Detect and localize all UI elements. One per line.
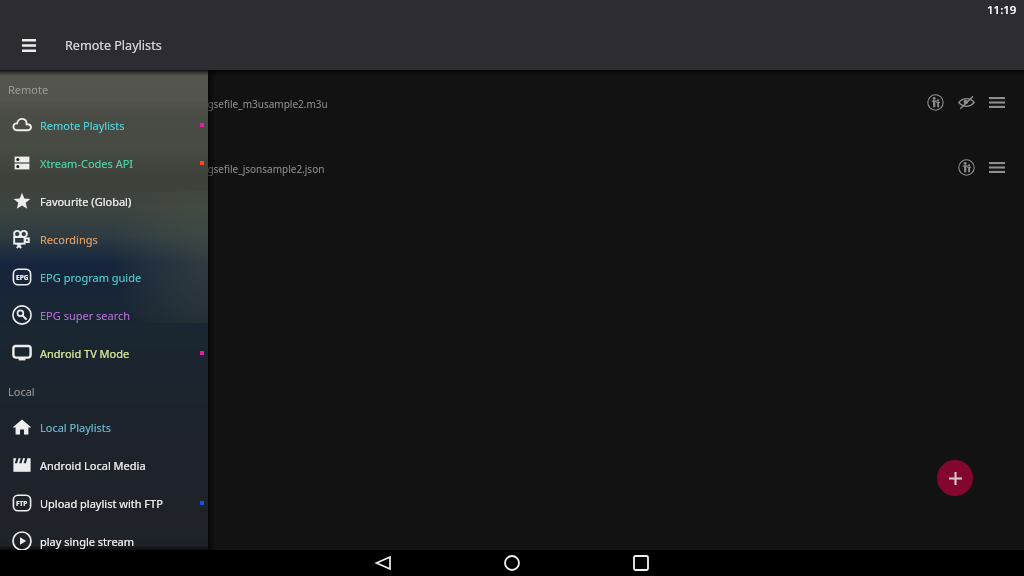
staticText: Local Playlists [40, 420, 112, 435]
staticText: EPG super search [40, 308, 131, 323]
button[interactable]: Remote Playlists [0, 106, 208, 144]
button[interactable]: Favourite (Global) [0, 182, 208, 220]
button[interactable]: Open navigation drawer [0, 22, 58, 68]
staticText: Remote Playlists [40, 118, 125, 133]
staticText: Xtream-Codes API [40, 156, 134, 171]
staticText: Local [8, 384, 35, 399]
button[interactable]: Android Local Media [0, 446, 208, 484]
staticText: http://server/live/gsefile_m3usample2.m3… [125, 97, 328, 111]
staticText: EPG [16, 273, 29, 282]
button[interactable]: Recent apps [616, 550, 666, 576]
button[interactable]: play single stream [0, 522, 208, 560]
button[interactable]: Add playlist [937, 460, 973, 496]
button[interactable]: Xtream-Codes API [0, 144, 208, 182]
button[interactable]: Local Playlists [0, 408, 208, 446]
staticText: Remote [8, 82, 49, 97]
button[interactable]: Recordings [0, 220, 208, 258]
button[interactable]: Home [487, 550, 537, 576]
button[interactable]: More options [984, 89, 1010, 115]
staticText: Favourite (Global) [40, 194, 132, 209]
button[interactable]: Hide [953, 89, 979, 115]
staticText: Upload playlist with FTP [40, 496, 163, 511]
staticText: http://server/live/gsefile_jsonsample2.j… [125, 162, 325, 176]
button[interactable]: EPG super search [0, 296, 208, 334]
button[interactable]: Android TV Mode [0, 334, 208, 372]
staticText: Android Local Media [40, 458, 146, 473]
button[interactable]: More options [984, 154, 1010, 180]
button[interactable]: FTP [0, 484, 208, 522]
button[interactable]: Parental control [922, 89, 948, 115]
button[interactable]: Parental control [953, 154, 979, 180]
staticText: Remote Playlists [65, 37, 162, 54]
staticText: Recordings [40, 232, 98, 247]
staticText: play single stream [40, 534, 135, 549]
button[interactable]: Back [358, 550, 408, 576]
staticText: Android TV Mode [40, 346, 130, 361]
staticText: EPG program guide [40, 270, 142, 285]
staticText: 11:19 [987, 2, 1017, 18]
button[interactable]: http://server/live/gsefile_m3usample2.m3… [0, 71, 1024, 136]
button[interactable]: http://server/live/gsefile_jsonsample2.j… [0, 136, 1024, 201]
button[interactable]: EPG [0, 258, 208, 296]
staticText: FTP [16, 499, 28, 508]
